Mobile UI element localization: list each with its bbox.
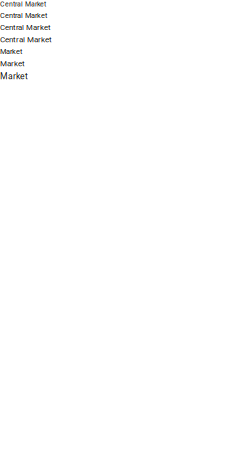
- staticText: Market: [0, 71, 28, 81]
- staticText: Central Market: [0, 35, 52, 44]
- staticText: Market: [0, 47, 22, 56]
- staticText: Central Market: [0, 23, 51, 32]
- staticText: Market: [0, 59, 25, 68]
- staticText: Central Market: [0, 11, 47, 20]
- staticText: Central Market: [0, 0, 46, 8]
